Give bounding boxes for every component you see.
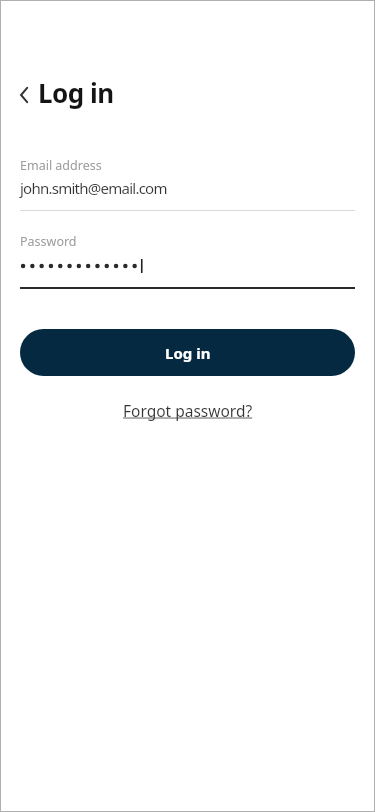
staticText: john.smith@email.com	[20, 178, 167, 198]
button[interactable]: Email address	[20, 157, 355, 198]
staticText: Email address	[20, 157, 102, 174]
button[interactable]: Log in	[20, 329, 355, 376]
staticText: Password	[20, 233, 77, 250]
button[interactable]: Forgot password?	[123, 400, 253, 421]
staticText: Log in	[38, 75, 114, 110]
button[interactable]: Log in	[16, 75, 114, 110]
button[interactable]: Password	[20, 233, 355, 250]
staticText: Log in	[165, 343, 211, 363]
